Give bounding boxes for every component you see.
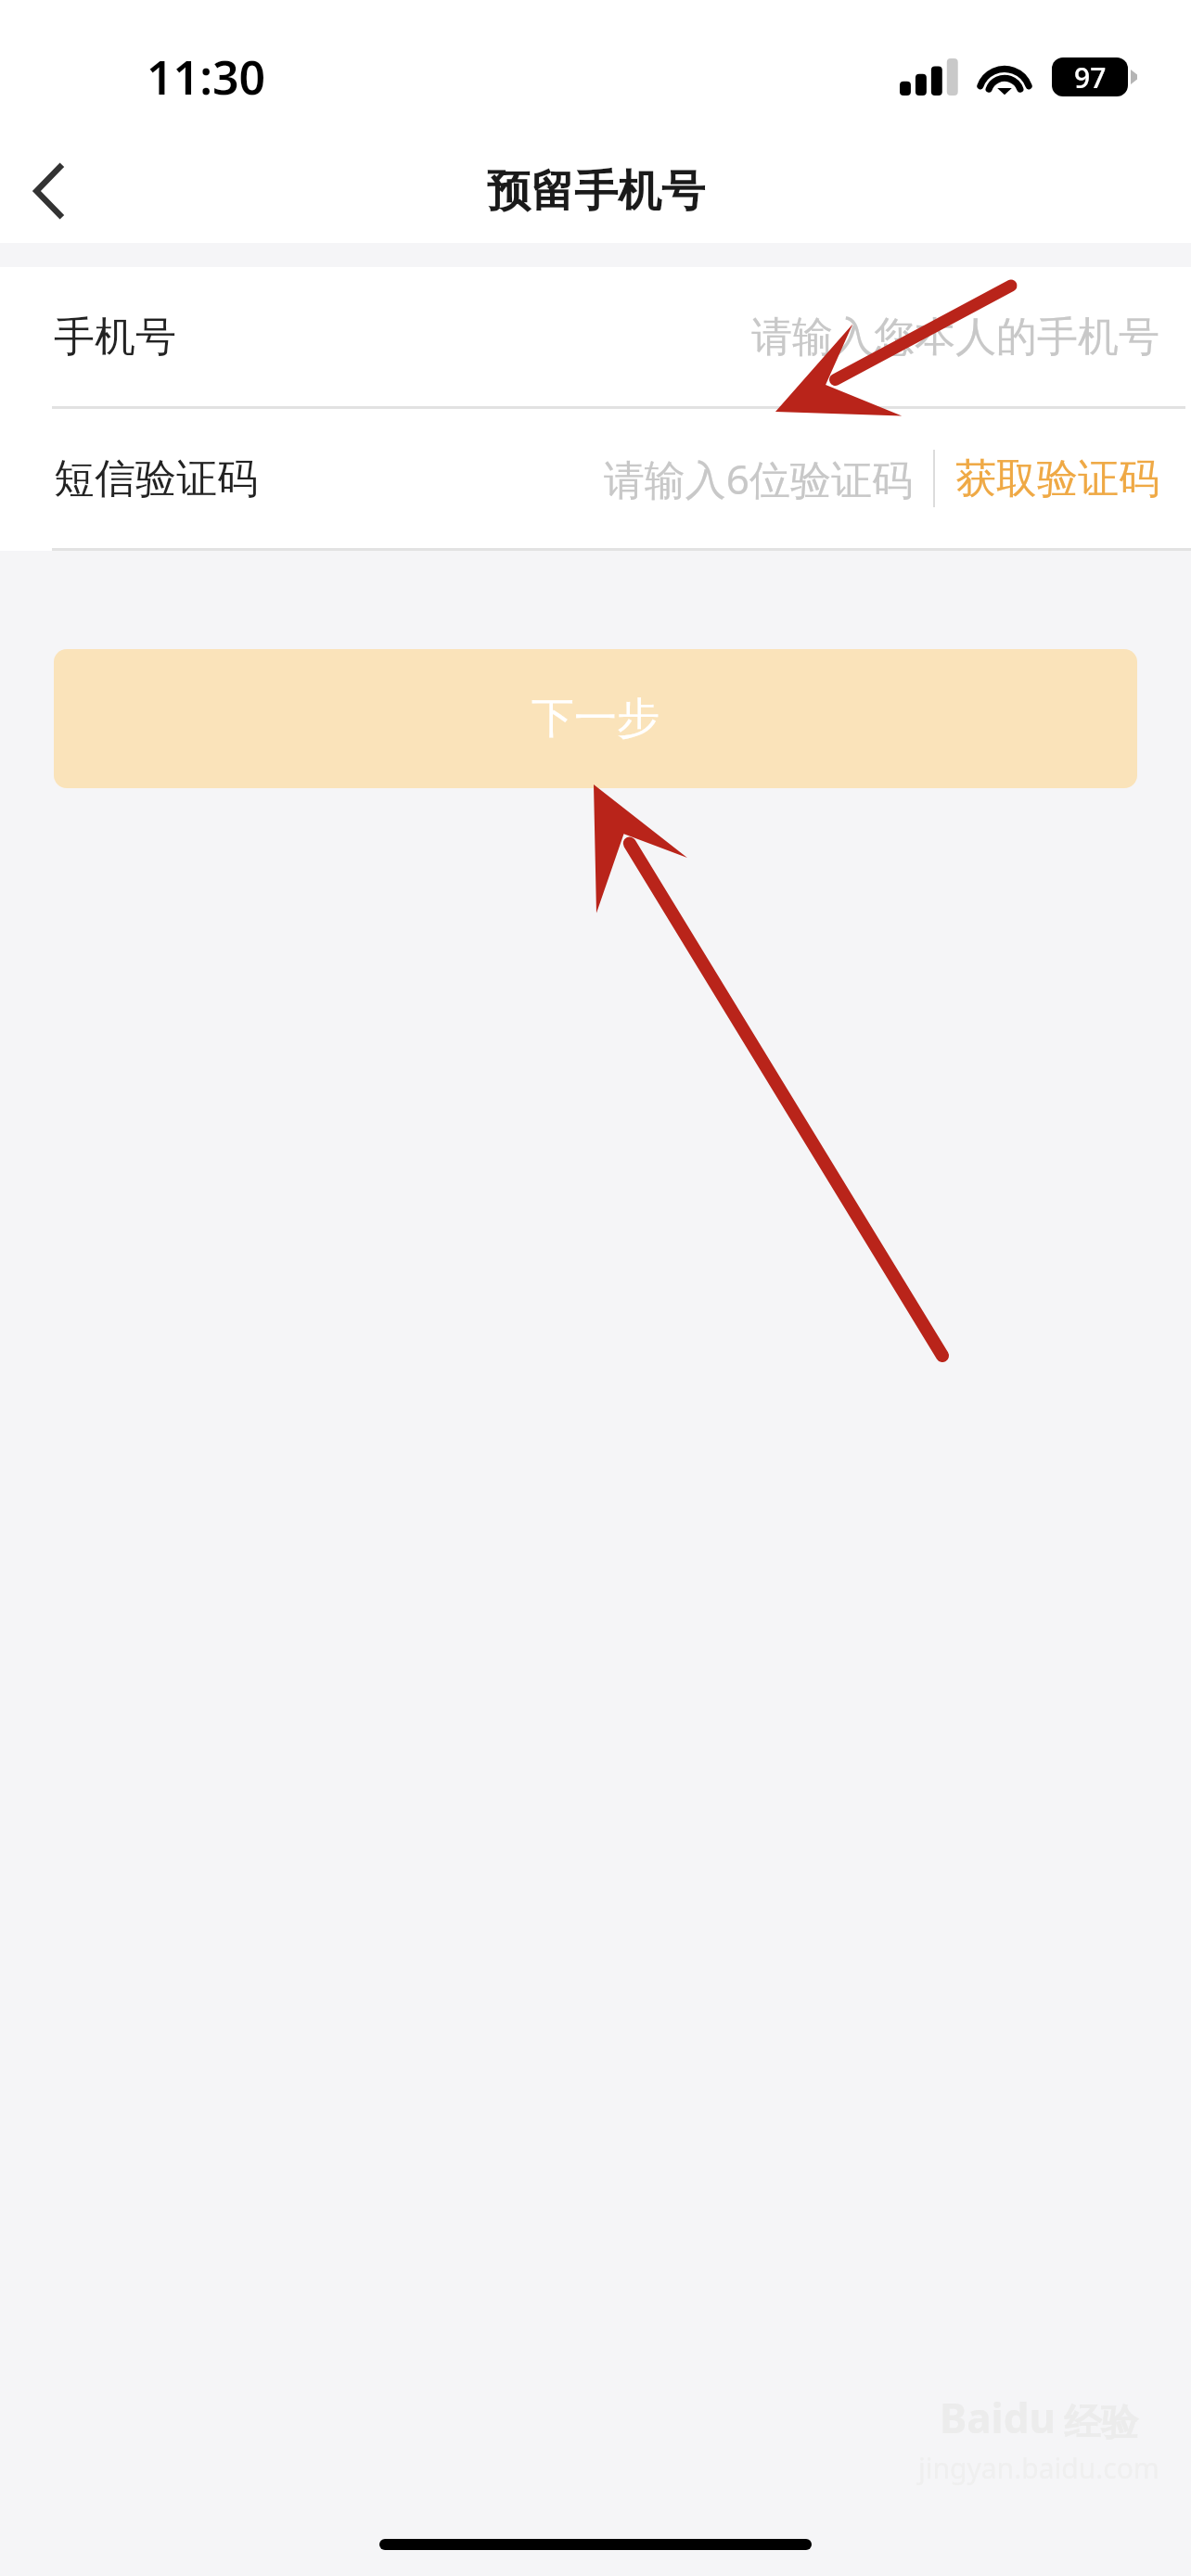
staticText: 短信验证码 — [54, 453, 258, 504]
staticText: 请输入6位验证码 — [603, 451, 913, 506]
button[interactable]: 手机号 — [0, 267, 1191, 406]
staticText: 手机号 — [54, 312, 176, 363]
staticText: 获取验证码 — [955, 453, 1159, 504]
staticText: 97 — [1074, 58, 1107, 96]
button[interactable]: 下一步 — [54, 649, 1137, 788]
staticText: 下一步 — [531, 692, 660, 746]
button[interactable]: 短信验证码 — [54, 409, 913, 548]
staticText: 经验 — [1064, 2399, 1138, 2445]
staticText: 请输入您本人的手机号 — [751, 312, 1159, 363]
button[interactable]: 获取验证码 — [955, 409, 1159, 548]
staticText: 预留手机号 — [487, 164, 705, 219]
button[interactable]: Back — [0, 139, 96, 243]
staticText: 11:30 — [147, 45, 266, 108]
staticText: Baidu — [940, 2390, 1057, 2445]
